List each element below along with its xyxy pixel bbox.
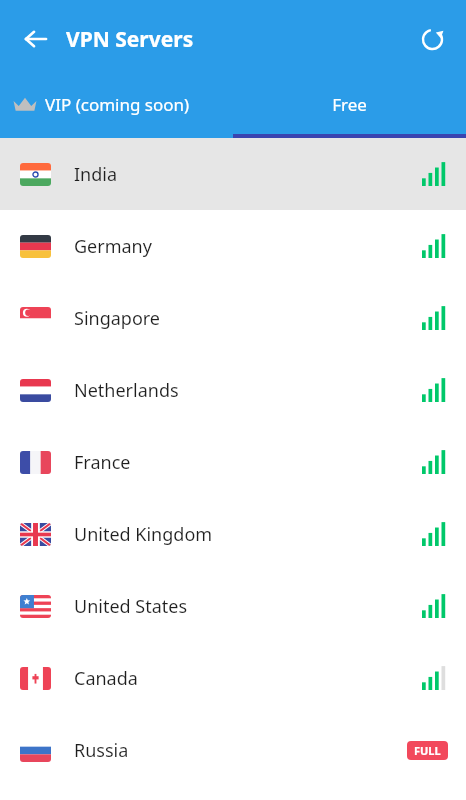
staticText: United Kingdom — [74, 522, 213, 547]
staticText: VPN Servers — [66, 25, 194, 54]
staticText: VIP (coming soon) — [45, 93, 190, 116]
button[interactable]: United Kingdom — [0, 498, 466, 570]
button[interactable]: United States — [0, 570, 466, 642]
button[interactable]: Singapore — [0, 282, 466, 354]
staticText: FULL — [414, 743, 441, 758]
button[interactable]: Russia — [0, 714, 466, 786]
button[interactable]: Refresh — [410, 17, 454, 61]
staticText: India — [74, 162, 118, 187]
button[interactable]: Back — [14, 17, 58, 61]
button[interactable]: Germany — [0, 210, 466, 282]
staticText: Free — [332, 93, 367, 116]
button[interactable]: Netherlands — [0, 354, 466, 426]
staticText: Germany — [74, 234, 152, 259]
staticText: Canada — [74, 666, 138, 691]
staticText: United States — [74, 594, 188, 619]
staticText: Singapore — [74, 306, 161, 331]
staticText: Russia — [74, 738, 129, 763]
button[interactable]: Free — [233, 70, 466, 138]
staticText: France — [74, 450, 131, 475]
button[interactable]: India — [0, 138, 466, 210]
staticText: Netherlands — [74, 378, 179, 403]
button[interactable]: France — [0, 426, 466, 498]
button[interactable]: VIP (coming soon) — [0, 70, 233, 138]
button[interactable]: Canada — [0, 642, 466, 714]
